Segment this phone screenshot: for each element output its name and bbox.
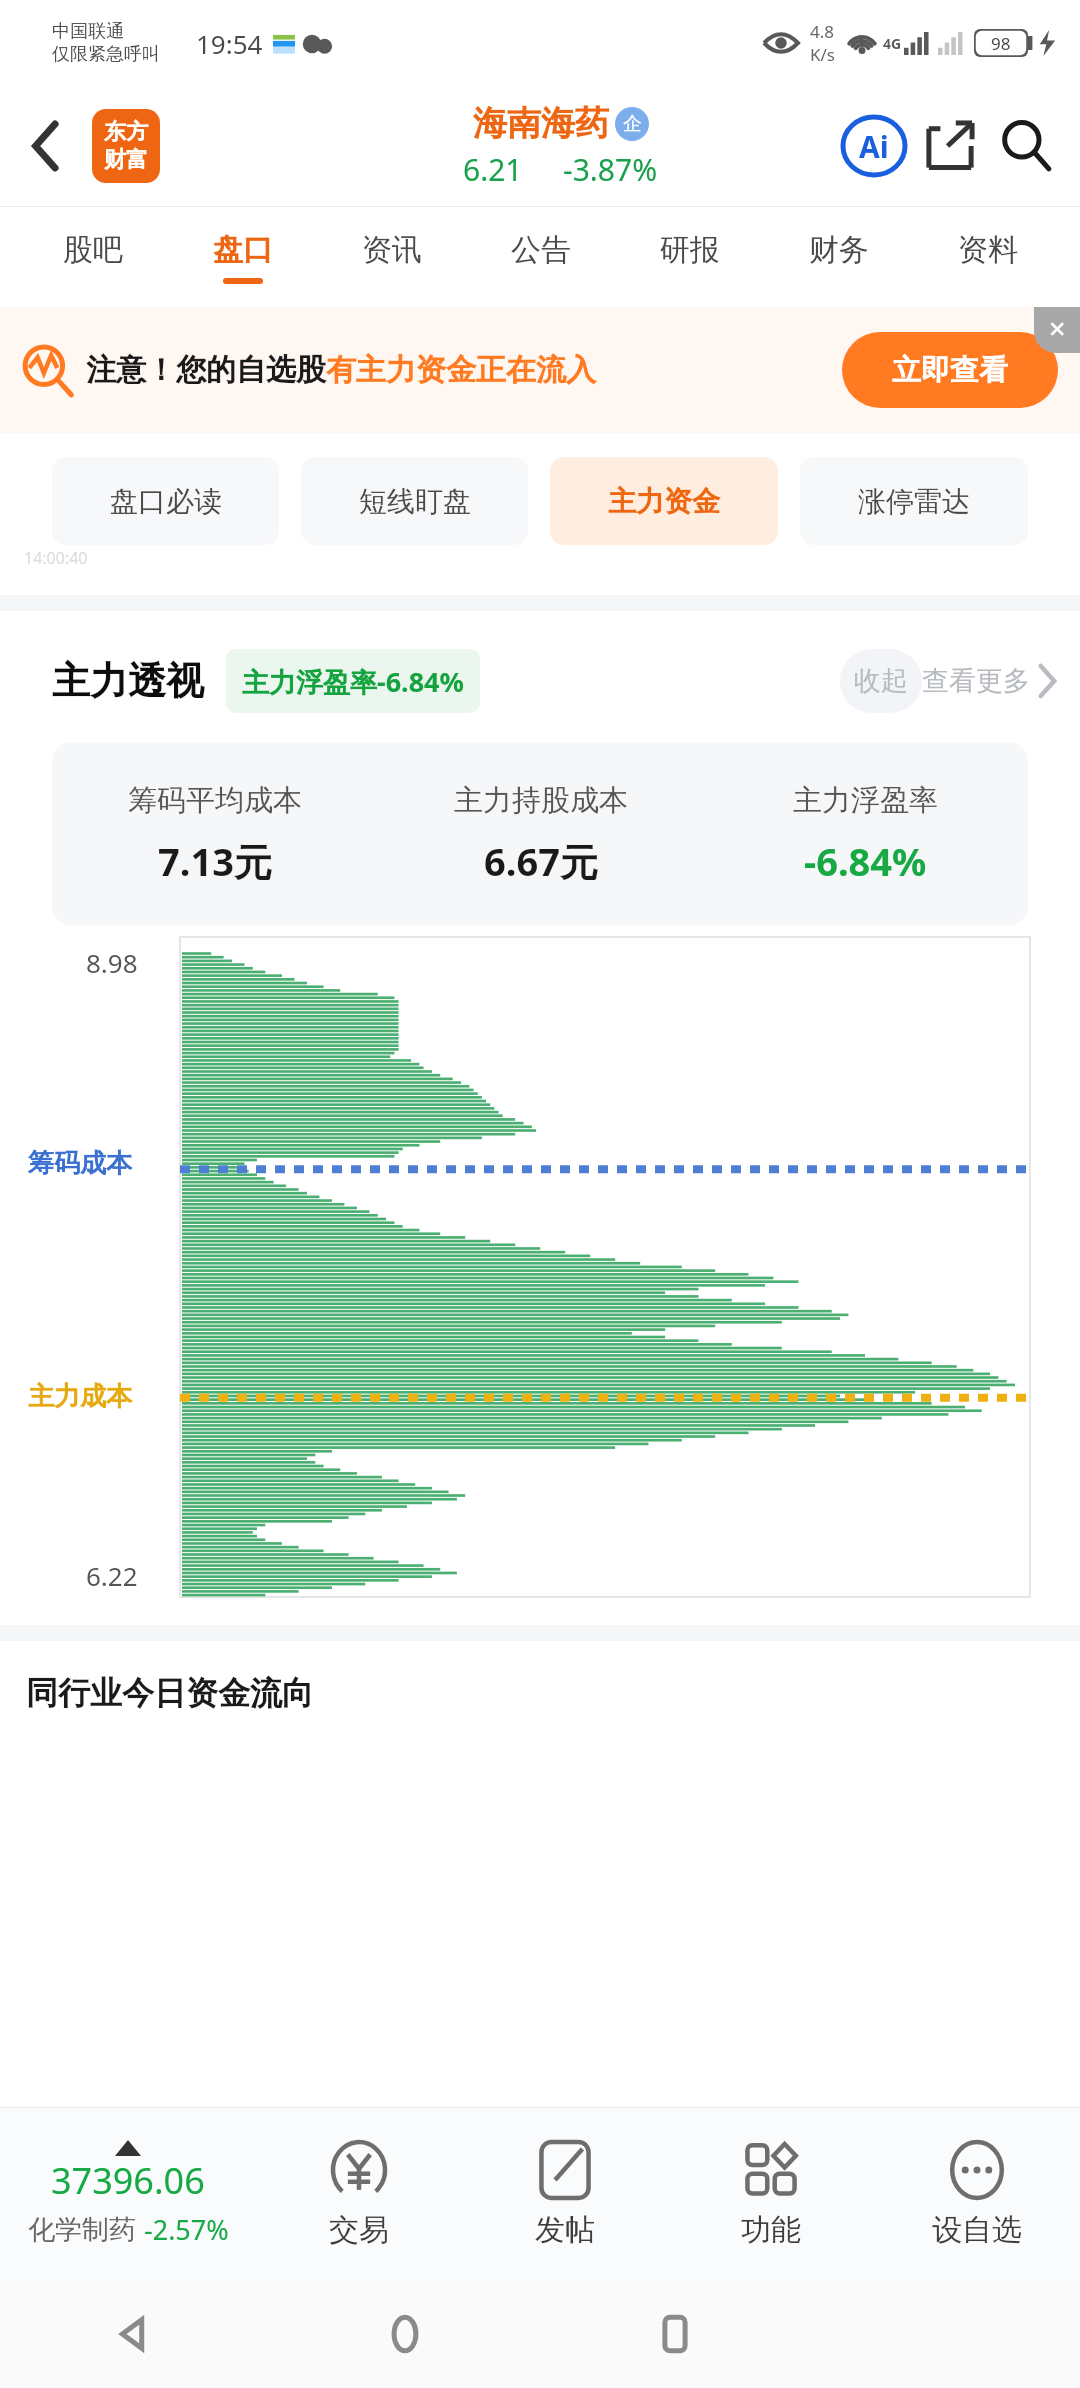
staticText: 8.98 bbox=[86, 945, 138, 980]
staticText: 海南海药 bbox=[473, 102, 609, 145]
button[interactable]: Share bbox=[912, 108, 988, 184]
staticText: 19:54 bbox=[196, 26, 263, 61]
staticText: 公告 bbox=[511, 231, 571, 269]
staticText: 筹码成本 bbox=[28, 1147, 132, 1180]
button[interactable]: 功能 bbox=[668, 2108, 874, 2280]
staticText: 交易 bbox=[329, 2211, 389, 2249]
staticText: 14:00:40 bbox=[24, 547, 88, 569]
staticText: 6.67元 bbox=[484, 835, 598, 887]
button[interactable]: 收起 bbox=[840, 649, 1056, 713]
staticText: 主力持股成本 bbox=[454, 782, 628, 819]
staticText: 主力资金 bbox=[608, 484, 720, 519]
staticText: 盘口必读 bbox=[110, 484, 222, 519]
button[interactable]: 37396.06 bbox=[0, 2108, 256, 2280]
button[interactable]: 公告 bbox=[466, 207, 615, 307]
button[interactable]: 设自选 bbox=[874, 2108, 1080, 2280]
staticText: 主力浮盈率-6.84% bbox=[242, 663, 464, 700]
staticText: 6.22 bbox=[86, 1558, 138, 1593]
staticText: 企 bbox=[623, 112, 642, 136]
staticText: 功能 bbox=[741, 2211, 801, 2249]
button[interactable]: 短线盯盘 bbox=[301, 457, 528, 545]
staticText: 化学制药 bbox=[28, 2213, 136, 2247]
staticText: 筹码平均成本 bbox=[128, 782, 302, 819]
button[interactable]: 东方 bbox=[92, 109, 160, 183]
button[interactable]: Search bbox=[988, 108, 1064, 184]
staticText: 设自选 bbox=[932, 2211, 1022, 2249]
button[interactable]: 主力资金 bbox=[550, 457, 778, 545]
button[interactable]: 财务 bbox=[764, 207, 913, 307]
staticText: 查看更多 bbox=[922, 664, 1030, 698]
staticText: 发帖 bbox=[535, 2211, 595, 2249]
staticText: 同行业今日资金流向 bbox=[26, 1673, 314, 1713]
staticText: 主力浮盈率 bbox=[793, 782, 938, 819]
button[interactable]: 立即查看 bbox=[842, 332, 1058, 408]
button[interactable]: 盘口必读 bbox=[52, 457, 279, 545]
button[interactable]: Back bbox=[0, 2280, 270, 2388]
staticText: Ai bbox=[859, 126, 889, 167]
staticText: 收起 bbox=[854, 664, 908, 698]
staticText: 4G bbox=[883, 34, 902, 53]
staticText: 仅限紧急呼叫 bbox=[52, 43, 160, 66]
staticText: 有主力资金正在流入 bbox=[326, 351, 596, 389]
button[interactable]: 发帖 bbox=[462, 2108, 668, 2280]
button[interactable]: 交易 bbox=[256, 2108, 462, 2280]
button[interactable]: Back bbox=[14, 114, 78, 178]
staticText: 7.13元 bbox=[158, 835, 272, 887]
button[interactable]: 资料 bbox=[913, 207, 1062, 307]
staticText: 东方 bbox=[104, 118, 148, 146]
staticText: 37396.06 bbox=[51, 2156, 205, 2205]
staticText: 资料 bbox=[958, 231, 1018, 269]
button[interactable]: AI bbox=[836, 108, 912, 184]
staticText: 98 bbox=[991, 32, 1011, 55]
staticText: 资讯 bbox=[362, 231, 422, 269]
staticText: 主力透视 bbox=[52, 657, 204, 705]
button[interactable]: 股吧 bbox=[18, 207, 168, 307]
staticText: ✕ bbox=[1048, 317, 1067, 343]
staticText: 财务 bbox=[809, 231, 869, 269]
staticText: -6.84% bbox=[804, 835, 927, 887]
button[interactable]: Close bbox=[1034, 307, 1080, 353]
staticText: 研报 bbox=[660, 231, 720, 269]
staticText: K/s bbox=[810, 43, 835, 66]
staticText: 盘口 bbox=[213, 231, 273, 269]
staticText: -2.57% bbox=[144, 2211, 229, 2248]
button[interactable]: 研报 bbox=[615, 207, 764, 307]
button[interactable]: 涨停雷达 bbox=[800, 457, 1028, 545]
button[interactable]: Home bbox=[270, 2280, 540, 2388]
staticText: 涨停雷达 bbox=[858, 484, 970, 519]
staticText: 立即查看 bbox=[892, 352, 1008, 389]
staticText: 短线盯盘 bbox=[359, 484, 471, 519]
staticText: 财富 bbox=[104, 146, 148, 174]
staticText: 注意！您的自选股 bbox=[86, 351, 326, 389]
staticText: 4.8 bbox=[810, 20, 835, 43]
staticText: -3.87% bbox=[563, 149, 658, 190]
staticText: 主力成本 bbox=[28, 1380, 132, 1413]
staticText: 股吧 bbox=[63, 231, 123, 269]
button[interactable]: 资讯 bbox=[317, 207, 466, 307]
button[interactable]: Recents bbox=[540, 2280, 810, 2388]
button[interactable]: 盘口 bbox=[168, 207, 317, 307]
staticText: 6.21 bbox=[463, 149, 523, 190]
staticText: 中国联通 bbox=[52, 20, 124, 43]
